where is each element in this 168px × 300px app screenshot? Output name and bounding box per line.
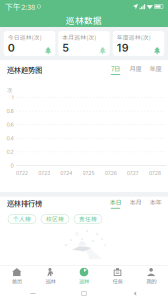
button[interactable]: 任务 xyxy=(101,266,134,287)
staticText: 校区榜 xyxy=(46,215,64,223)
staticText: 巡林 xyxy=(79,277,89,285)
staticText: 责任榜 xyxy=(79,215,97,223)
button[interactable]: 责任榜 xyxy=(74,215,102,224)
button[interactable]: Back xyxy=(117,287,153,300)
staticText: 19 xyxy=(117,41,129,54)
button[interactable]: 今日巡林(次) xyxy=(4,31,55,56)
staticText: 07.25 xyxy=(82,170,94,176)
staticText: 0.6 xyxy=(6,122,13,128)
staticText: 07.24 xyxy=(60,170,72,176)
staticText: 07.26 xyxy=(105,170,117,176)
staticText: 07.27 xyxy=(127,170,139,176)
staticText: 本日 xyxy=(109,198,121,207)
button[interactable]: 本月巡林(次) xyxy=(58,31,110,56)
staticText: 月度 xyxy=(129,64,141,73)
staticText: 0.4 xyxy=(6,135,13,141)
staticText: 7日 xyxy=(111,64,120,73)
button[interactable]: 本年 xyxy=(148,198,163,209)
button[interactable]: 本日 xyxy=(108,198,123,209)
staticText: 07.23 xyxy=(38,170,50,176)
staticText: 首页 xyxy=(12,277,22,285)
button[interactable]: Recents xyxy=(15,287,51,300)
button[interactable]: 巡林 xyxy=(34,266,67,287)
button[interactable]: 个人榜 xyxy=(8,215,36,224)
button[interactable]: 我的 xyxy=(134,266,168,287)
staticText: 巡林排行榜 xyxy=(7,198,42,208)
staticText: 5 xyxy=(62,41,69,54)
staticText: 我的 xyxy=(146,277,156,285)
button[interactable]: 本月 xyxy=(128,198,143,209)
staticText: 0 xyxy=(8,41,15,54)
staticText: 巡林趋势图 xyxy=(7,64,42,75)
button[interactable]: 7日 xyxy=(108,64,123,75)
button[interactable]: 校区榜 xyxy=(41,215,69,224)
staticText: 巡林数据 xyxy=(66,14,102,26)
staticText: 年度 xyxy=(149,64,161,73)
staticText: 0 xyxy=(10,162,13,169)
staticText: 年度巡林(次) xyxy=(117,33,151,41)
button[interactable]: 巡林 xyxy=(67,266,101,287)
button[interactable]: 年度 xyxy=(148,64,163,75)
staticText: 个人榜 xyxy=(13,215,31,223)
staticText: 次 xyxy=(7,86,12,94)
staticText: 任务 xyxy=(113,277,123,285)
staticText: 今日巡林(次) xyxy=(8,33,42,41)
staticText: 下午2:38 xyxy=(5,1,35,12)
staticText: 本年 xyxy=(149,198,161,207)
staticText: 巡林 xyxy=(45,277,55,285)
staticText: 本月 xyxy=(129,198,141,207)
staticText: 0.2 xyxy=(6,149,13,155)
staticText: 1 xyxy=(11,94,13,101)
staticText: 本月巡林(次) xyxy=(62,33,96,41)
button[interactable]: 年度巡林(次) xyxy=(113,31,164,56)
button[interactable]: Home xyxy=(66,287,102,300)
button[interactable]: 月度 xyxy=(128,64,143,75)
staticText: 07.22 xyxy=(16,170,28,176)
staticText: 07.28 xyxy=(149,170,161,176)
button[interactable]: 首页 xyxy=(0,266,34,287)
staticText: 0.8 xyxy=(6,108,13,114)
